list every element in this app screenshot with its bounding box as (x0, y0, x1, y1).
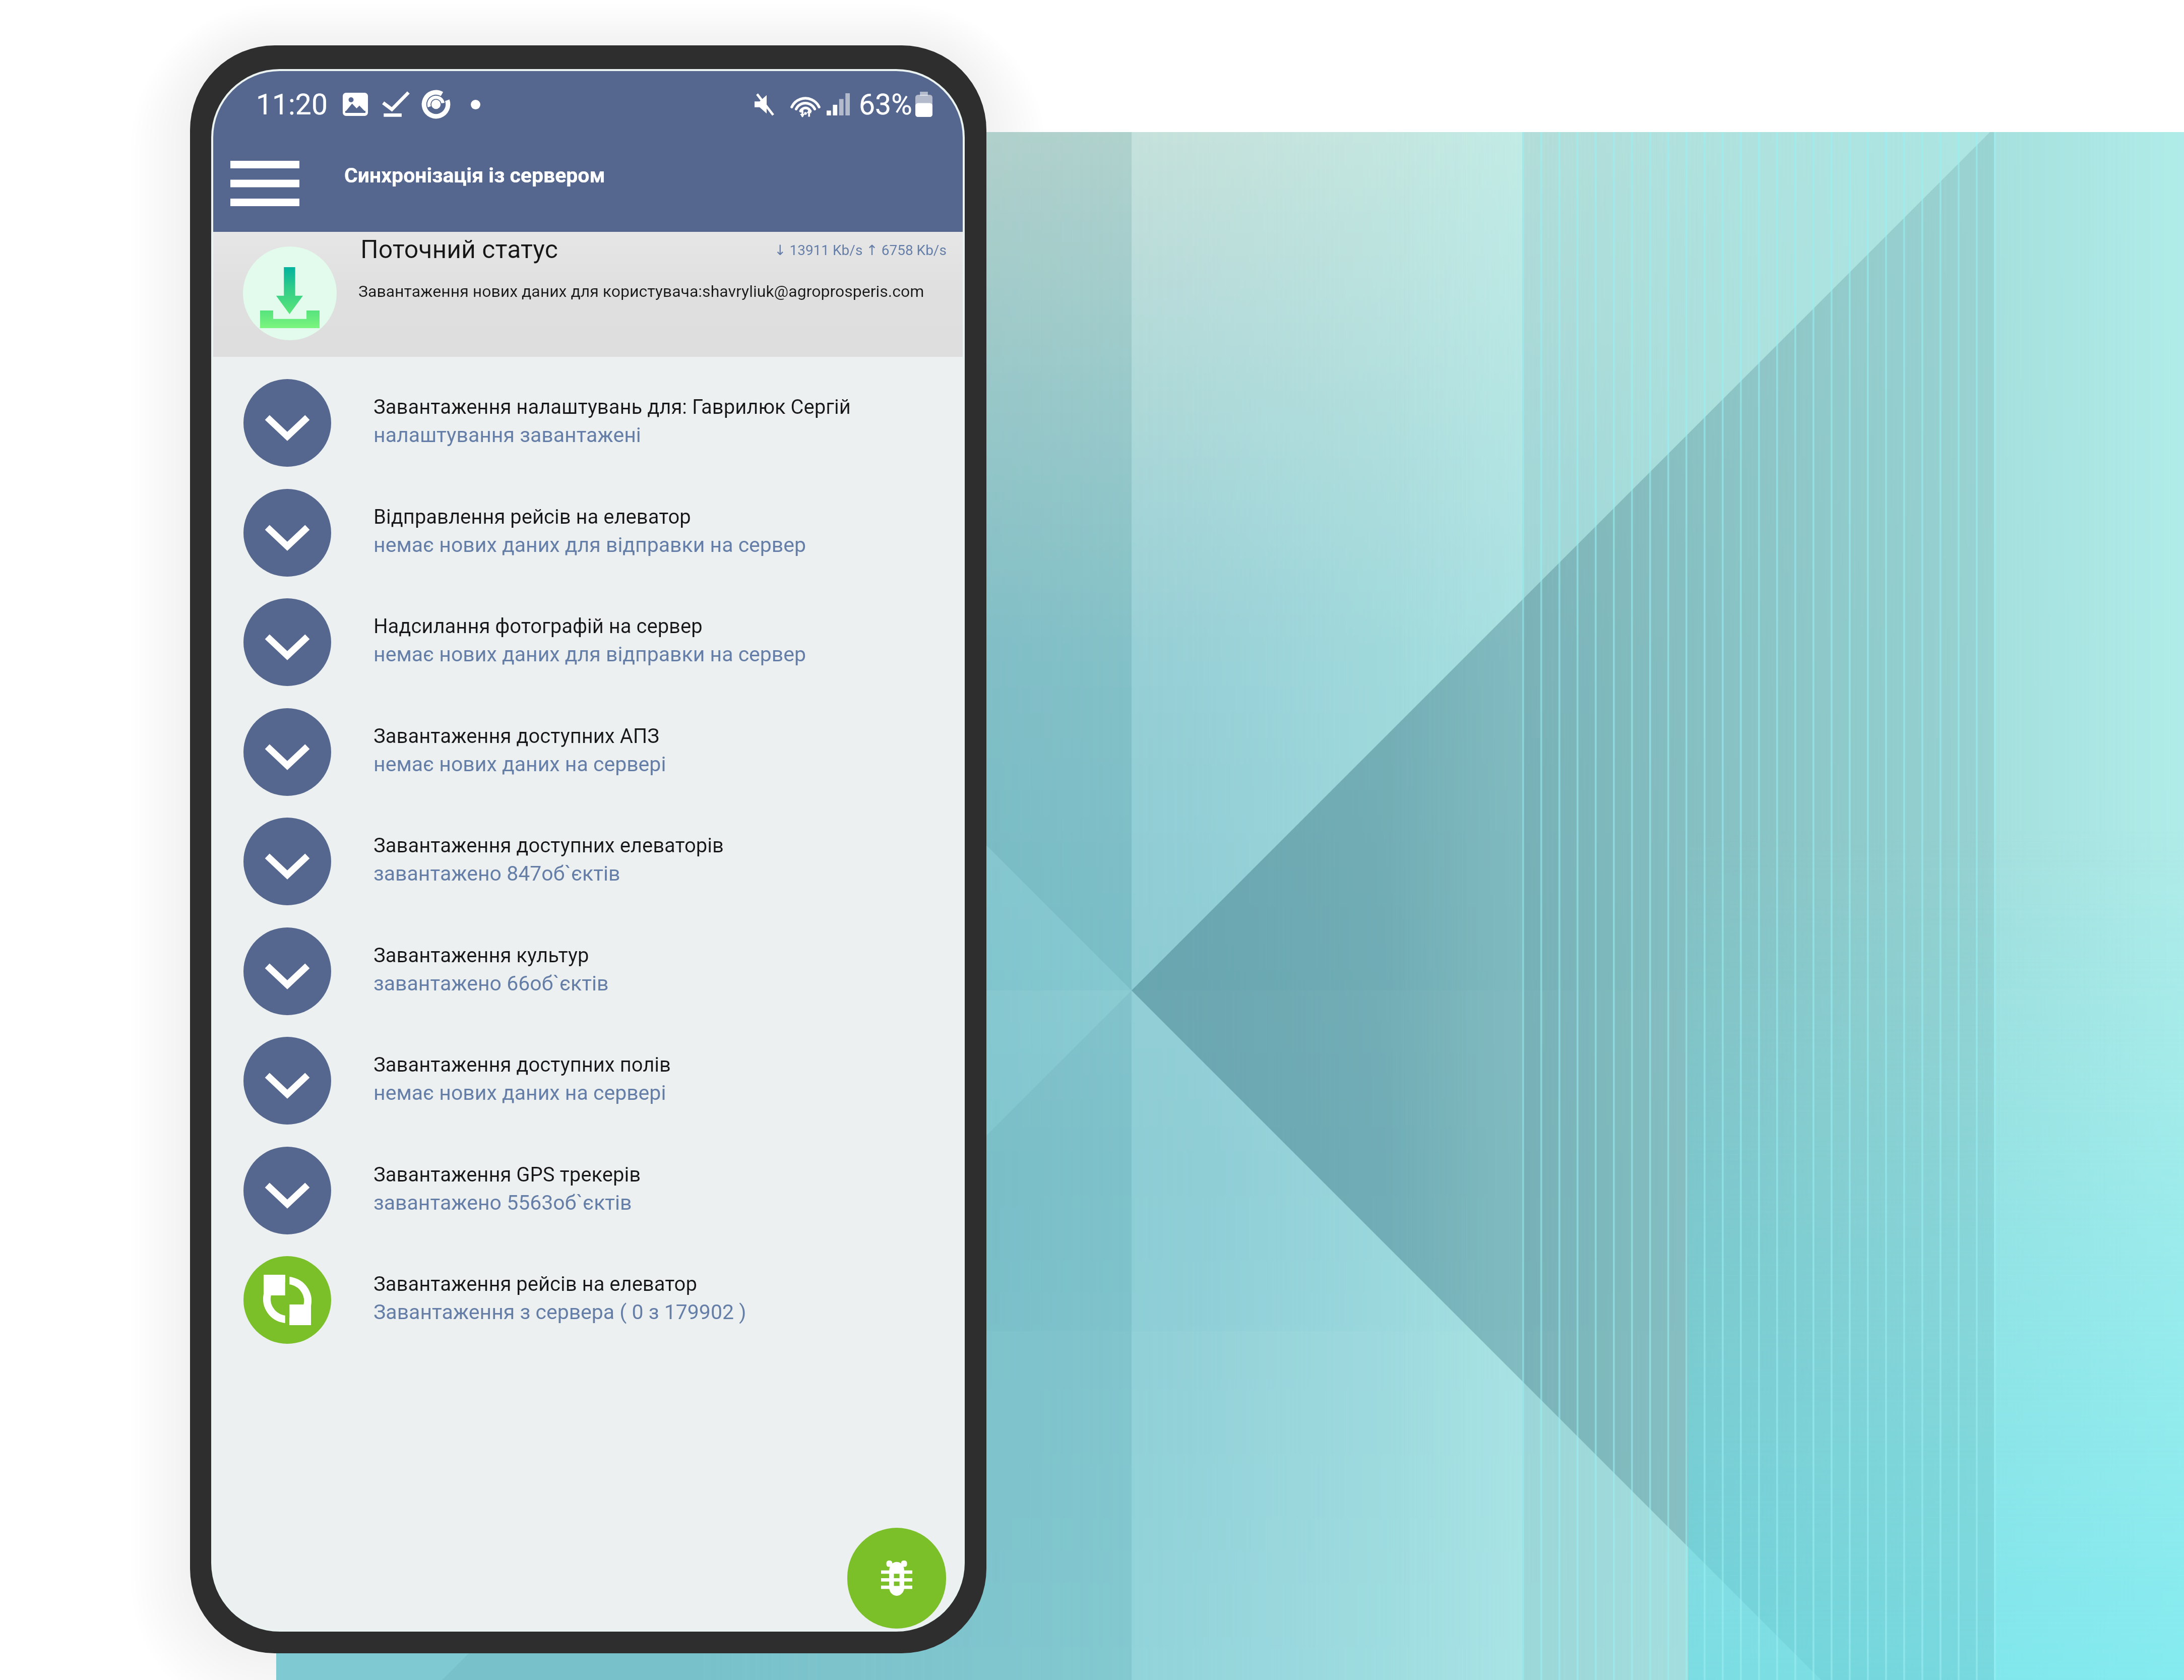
staticText: Синхронізація із сервером (344, 163, 605, 188)
staticText: Завантаження нових даних для користувача… (358, 282, 924, 301)
staticText: немає нових даних для відправки на серве… (373, 533, 806, 557)
staticText: немає нових даних на сервері (373, 1081, 666, 1105)
staticText: немає нових даних на сервері (373, 752, 666, 776)
staticText: завантажено 5563об`єктів (373, 1191, 632, 1215)
staticText: Завантаження культур (373, 944, 589, 967)
button[interactable]: Відправлення рейсів на елеватор (213, 478, 963, 587)
button[interactable]: Завантаження GPS трекерів (213, 1136, 963, 1245)
button[interactable]: Завантаження культур (213, 917, 963, 1026)
staticText: завантажено 66об`єктів (373, 971, 609, 995)
staticText: налаштування завантажені (373, 423, 641, 447)
button[interactable]: Завантаження доступних АПЗ (213, 698, 963, 806)
staticText: Завантаження доступних полів (373, 1053, 671, 1077)
staticText: 11:20 (256, 88, 328, 121)
staticText: немає нових даних для відправки на серве… (373, 642, 806, 666)
staticText: Поточний статус (360, 235, 558, 265)
button[interactable]: Поточний статус (213, 232, 963, 357)
button[interactable]: Report a bug (847, 1528, 946, 1629)
staticText: завантажено 847об`єктів (373, 861, 620, 886)
button[interactable]: Завантаження рейсів на елеватор (213, 1246, 963, 1354)
staticText: Відправлення рейсів на елеватор (373, 505, 691, 529)
button[interactable]: Завантаження доступних полів (213, 1026, 963, 1135)
button[interactable]: Завантаження налаштувань для: Гаврилюк С… (213, 368, 963, 477)
button[interactable]: Надсилання фотографій на сервер (213, 588, 963, 697)
staticText: Завантаження налаштувань для: Гаврилюк С… (373, 395, 851, 419)
button[interactable]: Open navigation menu (214, 147, 315, 220)
staticText: Надсилання фотографій на сервер (373, 614, 703, 638)
staticText: Завантаження доступних АПЗ (373, 724, 660, 748)
staticText: Завантаження GPS трекерів (373, 1163, 641, 1187)
staticText: 63% (859, 88, 912, 121)
button[interactable]: Завантаження доступних елеваторів (213, 807, 963, 916)
staticText: ↓ 13911 Kb/s ↑ 6758 Kb/s (774, 242, 947, 259)
staticText: Завантаження доступних елеваторів (373, 834, 724, 857)
staticText: Завантаження рейсів на елеватор (373, 1272, 697, 1296)
staticText: Завантаження з сервера ( 0 з 179902 ) (373, 1300, 746, 1324)
